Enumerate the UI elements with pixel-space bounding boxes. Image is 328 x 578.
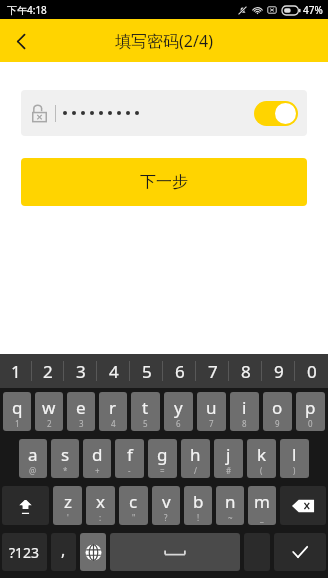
staticText: 8 [241, 360, 251, 383]
staticText: 2 [47, 418, 52, 429]
button[interactable]: Backspace [280, 486, 326, 525]
staticText: 47% [303, 3, 323, 17]
button[interactable]: f [115, 439, 144, 478]
button[interactable]: o [263, 392, 292, 431]
button[interactable]: h [181, 439, 210, 478]
button[interactable]: e [67, 392, 95, 431]
staticText: w [42, 396, 56, 419]
button[interactable]: 下一步 [21, 158, 307, 206]
staticText: j [226, 443, 231, 466]
button[interactable]: 4 [97, 354, 130, 388]
staticText: 6 [175, 360, 185, 383]
button[interactable]: Enter [274, 533, 326, 571]
button[interactable]: g [148, 439, 177, 478]
button[interactable]: 2 [32, 354, 64, 388]
button[interactable]: v [152, 486, 180, 525]
staticText: f [127, 443, 133, 466]
staticText: t [142, 396, 149, 419]
staticText: 7 [208, 360, 218, 383]
staticText: ? [164, 512, 168, 523]
staticText: l [292, 443, 297, 466]
staticText: _ [260, 512, 264, 523]
button[interactable]: t [131, 392, 160, 431]
button[interactable]: 9 [262, 354, 295, 388]
staticText: x [96, 490, 105, 513]
button[interactable]: Back [0, 20, 42, 62]
staticText: ) [293, 465, 296, 476]
staticText: @ [29, 465, 37, 476]
button[interactable]: Show password [254, 101, 298, 126]
button[interactable]: k [247, 439, 276, 478]
button[interactable]: 5 [130, 354, 163, 388]
staticText: c [129, 490, 138, 513]
button[interactable]: , [51, 533, 76, 571]
button[interactable]: w [35, 392, 63, 431]
staticText: z [64, 490, 72, 513]
staticText: 1 [11, 360, 21, 383]
button[interactable]: z [53, 486, 82, 525]
staticText: g [157, 443, 168, 466]
staticText: 9 [275, 418, 280, 429]
staticText: i [242, 396, 247, 419]
button[interactable]: y [164, 392, 193, 431]
staticText: 0 [307, 360, 317, 383]
button[interactable]: ?123 [2, 533, 47, 571]
staticText: y [174, 396, 183, 419]
staticText: 1 [15, 418, 20, 429]
staticText: 5 [142, 360, 152, 383]
button[interactable]: 8 [229, 354, 262, 388]
staticText: - [128, 465, 131, 476]
button[interactable]: l [280, 439, 309, 478]
button[interactable]: m [248, 486, 276, 525]
staticText: 6 [176, 418, 181, 429]
staticText: ~ [228, 512, 233, 523]
button[interactable]: 0 [295, 354, 328, 388]
button[interactable]: s [51, 439, 79, 478]
button[interactable]: Change language [80, 533, 106, 571]
staticText: r [109, 396, 117, 419]
button[interactable]: i [230, 392, 259, 431]
button[interactable]: c [119, 486, 148, 525]
staticText: 7 [209, 418, 214, 429]
staticText: 9 [274, 360, 284, 383]
button[interactable]: 7 [196, 354, 229, 388]
button[interactable]: a [19, 439, 47, 478]
staticText: ' [67, 512, 69, 523]
staticText: ! [197, 512, 200, 523]
staticText: v [162, 490, 171, 513]
staticText: 3 [76, 360, 86, 383]
button[interactable]: x [86, 486, 115, 525]
staticText: h [190, 443, 201, 466]
staticText: ?123 [9, 543, 40, 562]
button[interactable]: Show password [21, 90, 307, 136]
staticText: m [254, 490, 270, 513]
staticText: 填写密码(2/4) [115, 30, 213, 52]
staticText: * [63, 465, 68, 476]
staticText: 3 [79, 418, 84, 429]
staticText: o [272, 396, 283, 419]
staticText: k [257, 443, 267, 466]
button[interactable]: d [83, 439, 111, 478]
staticText: 下一步 [140, 172, 188, 192]
staticText: 0 [308, 418, 313, 429]
staticText: " [132, 512, 136, 523]
button[interactable]: b [184, 486, 212, 525]
button[interactable]: q [3, 392, 31, 431]
button[interactable]: 3 [64, 354, 97, 388]
button[interactable]: Shift [2, 486, 49, 525]
button[interactable]: r [99, 392, 127, 431]
staticText: b [193, 490, 204, 513]
staticText: : [99, 512, 102, 523]
button[interactable]: n [216, 486, 244, 525]
button[interactable]: u [197, 392, 226, 431]
staticText: 2 [43, 360, 53, 383]
button[interactable]: 6 [163, 354, 196, 388]
button[interactable]: j [214, 439, 243, 478]
staticText: ( [260, 465, 263, 476]
staticText: u [206, 396, 217, 419]
button[interactable]: p [296, 392, 325, 431]
button[interactable]: 1 [0, 354, 32, 388]
button[interactable]: Space [110, 533, 240, 571]
staticText: # [226, 465, 232, 476]
